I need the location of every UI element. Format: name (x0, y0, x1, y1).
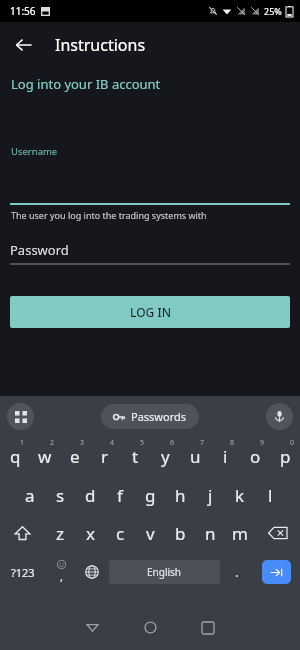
staticText: j (208, 484, 213, 507)
staticText: 9 (260, 438, 265, 448)
button[interactable]: n (195, 514, 225, 552)
staticText: , (60, 569, 63, 584)
staticText: 8 (230, 438, 235, 448)
button[interactable]: f (105, 476, 135, 514)
button[interactable]: j (195, 476, 225, 514)
staticText: p (280, 445, 291, 468)
button[interactable]: c (105, 514, 135, 552)
button[interactable]: Home (121, 605, 179, 650)
button[interactable]: . (222, 552, 252, 592)
button[interactable]: e (60, 436, 90, 476)
button[interactable]: m (225, 514, 255, 552)
staticText: x (86, 522, 95, 545)
button[interactable]: p (270, 436, 300, 476)
button[interactable]: b (165, 514, 195, 552)
staticText: n (205, 522, 216, 545)
staticText: Password (10, 241, 69, 259)
staticText: v (146, 522, 155, 545)
button[interactable]: Back (63, 605, 121, 650)
button[interactable]: g (135, 476, 165, 514)
button[interactable]: d (75, 476, 105, 514)
staticText: 3 (80, 438, 85, 448)
button[interactable]: x (75, 514, 105, 552)
staticText: d (85, 484, 96, 507)
staticText: r (101, 445, 109, 468)
staticText: Log into your IB account (11, 75, 161, 93)
staticText: 25% (264, 5, 282, 17)
button[interactable]: t (120, 436, 150, 476)
staticText: 1 (20, 438, 25, 448)
button[interactable]: Recent apps (179, 605, 237, 650)
button[interactable] (10, 177, 290, 205)
button[interactable]: k (225, 476, 255, 514)
staticText: 2 (50, 438, 55, 448)
staticText: 6 (170, 438, 175, 448)
button[interactable]: LOG IN (10, 296, 290, 328)
staticText: Passwords (131, 409, 187, 424)
staticText: m (232, 522, 248, 545)
staticText: k (235, 484, 245, 507)
staticText: Username (11, 145, 58, 158)
button[interactable]: Shift (0, 514, 45, 552)
button[interactable]: Password (10, 241, 290, 265)
button[interactable]: ?123 (0, 552, 46, 592)
button[interactable]: h (165, 476, 195, 514)
staticText: Instructions (55, 34, 146, 56)
staticText: 5 (140, 438, 145, 448)
button[interactable]: Backspace (255, 514, 300, 552)
staticText: i (223, 445, 228, 468)
button[interactable]: s (45, 476, 75, 514)
staticText: e (70, 445, 80, 468)
button[interactable]: Switch language (77, 552, 107, 592)
staticText: y (161, 445, 170, 468)
button[interactable]: w (30, 436, 60, 476)
staticText: 0 (290, 438, 295, 448)
staticText: LOG IN (130, 304, 171, 320)
staticText: 7 (200, 438, 205, 448)
button[interactable]: o (240, 436, 270, 476)
staticText: h (175, 484, 186, 507)
staticText: o (250, 445, 261, 468)
staticText: c (116, 522, 125, 545)
button[interactable]: a (15, 476, 45, 514)
button[interactable]: i (210, 436, 240, 476)
button[interactable]: Next (262, 560, 291, 584)
button[interactable]: Voice input (266, 403, 293, 430)
button[interactable]: Passwords (101, 404, 199, 429)
button[interactable]: Emoji (46, 552, 77, 592)
staticText: b (175, 522, 186, 545)
button[interactable]: English (109, 560, 220, 584)
staticText: . (235, 563, 239, 581)
staticText: The user you log into the trading system… (11, 209, 207, 221)
staticText: u (190, 445, 201, 468)
button[interactable]: l (255, 476, 285, 514)
button[interactable]: u (180, 436, 210, 476)
button[interactable]: y (150, 436, 180, 476)
staticText: l (268, 484, 273, 507)
staticText: 4 (110, 438, 115, 448)
staticText: w (38, 445, 52, 468)
staticText: s (56, 484, 65, 507)
button[interactable]: v (135, 514, 165, 552)
button[interactable]: z (45, 514, 75, 552)
staticText: g (145, 484, 156, 507)
staticText: ?123 (11, 565, 35, 580)
staticText: English (147, 565, 182, 579)
staticText: q (10, 445, 21, 468)
button[interactable]: Toolbar (7, 403, 34, 430)
staticText: z (56, 522, 64, 545)
button[interactable]: q (0, 436, 30, 476)
staticText: f (117, 484, 123, 507)
button[interactable]: r (90, 436, 120, 476)
staticText: t (132, 445, 139, 468)
staticText: a (25, 484, 35, 507)
staticText: 11:56 (10, 4, 36, 18)
button[interactable]: Back (8, 29, 40, 61)
